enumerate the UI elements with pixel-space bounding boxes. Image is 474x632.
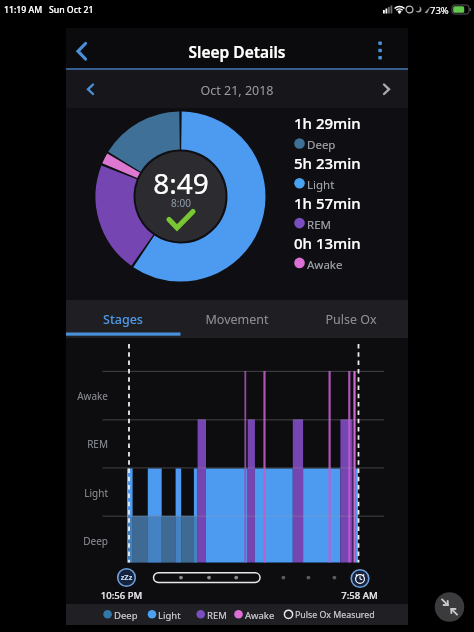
button[interactable] — [76, 74, 104, 102]
staticText: Pulse Ox — [294, 311, 408, 328]
button[interactable] — [366, 34, 394, 62]
staticText: 1h 29min — [294, 113, 404, 133]
button[interactable] — [348, 566, 372, 590]
button[interactable] — [115, 566, 139, 590]
staticText: 8:49 — [141, 164, 221, 202]
staticText: Oct 21, 2018 — [157, 82, 317, 99]
staticText: Deep — [66, 534, 108, 548]
staticText: REM — [307, 217, 397, 233]
staticText: Pulse Ox Measured — [295, 609, 405, 621]
staticText: 11:19 AM Sun Oct 21 — [4, 4, 124, 16]
button[interactable] — [180, 300, 294, 338]
staticText: Deep — [114, 609, 159, 622]
staticText: Light — [307, 177, 397, 193]
staticText: Awake — [66, 389, 108, 403]
button[interactable] — [434, 592, 464, 622]
staticText: 73% — [430, 4, 452, 17]
staticText: Deep — [307, 137, 397, 153]
staticText: REM — [207, 609, 252, 622]
staticText: Stages — [66, 311, 180, 328]
staticText: Light — [158, 609, 203, 622]
button[interactable] — [70, 34, 98, 62]
staticText: 0h 13min — [294, 233, 404, 253]
staticText: zZz — [115, 572, 138, 582]
staticText: Light — [66, 486, 108, 500]
staticText: Sleep Details — [137, 41, 337, 62]
staticText: Awake — [307, 257, 397, 273]
staticText: 8:00 — [161, 196, 201, 210]
button[interactable] — [372, 74, 400, 102]
staticText: Awake — [245, 609, 290, 622]
staticText: 5h 23min — [294, 153, 404, 173]
staticText: 10:56 PM — [91, 589, 152, 602]
staticText: Movement — [180, 311, 294, 328]
button[interactable] — [66, 300, 180, 338]
button[interactable] — [294, 300, 408, 338]
staticText: REM — [66, 437, 108, 451]
staticText: 1h 57min — [294, 193, 404, 213]
staticText: 7:58 AM — [329, 589, 390, 602]
